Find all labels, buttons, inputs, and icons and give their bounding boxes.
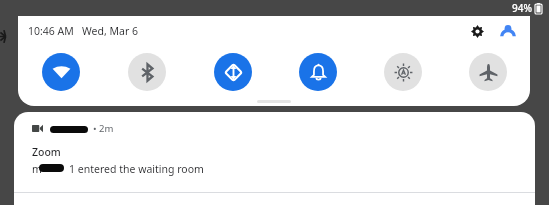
button[interactable]: Airplane mode: [469, 53, 507, 91]
staticText: 10:46 AM: [28, 24, 74, 38]
button[interactable]: Settings: [466, 20, 488, 42]
staticText: • 2m: [93, 122, 114, 135]
staticText: m 1 entered the waiting room: [32, 162, 204, 176]
staticText: 94%: [512, 1, 532, 15]
button[interactable]: Auto brightness: [384, 53, 422, 91]
button[interactable]: Wi-Fi: [42, 53, 80, 91]
button[interactable]: Auto-rotate: [214, 53, 252, 91]
staticText: Wed, Mar 6: [82, 24, 138, 38]
button[interactable]: Bluetooth: [128, 53, 166, 91]
button[interactable]: Account: [497, 20, 519, 42]
staticText: Zoom: [32, 145, 61, 159]
button[interactable]: • 2m: [14, 112, 535, 205]
button[interactable]: Do not disturb: [299, 53, 337, 91]
